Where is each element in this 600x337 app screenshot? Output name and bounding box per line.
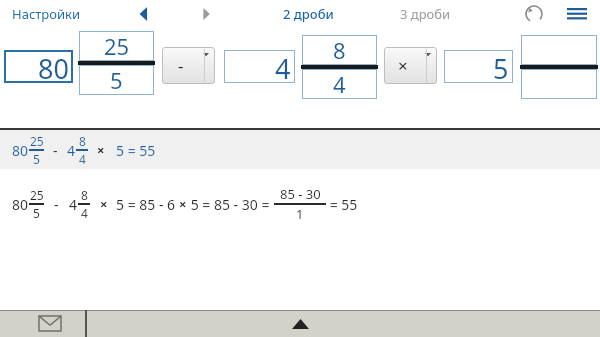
button[interactable]: Operator - <box>162 47 215 84</box>
staticText: 80 <box>12 141 29 160</box>
staticText: 1 <box>296 205 304 223</box>
staticText: 5 <box>33 205 40 221</box>
button[interactable]: 8 <box>302 35 377 65</box>
button[interactable]: 80 <box>4 50 73 83</box>
staticText: 5 <box>493 50 509 83</box>
staticText: 4 <box>67 141 76 160</box>
button[interactable]: Настройки <box>12 5 81 23</box>
staticText: 4 <box>69 195 78 214</box>
button[interactable]: 3 дроби <box>400 5 451 23</box>
staticText: 4 <box>275 50 291 83</box>
staticText: - <box>54 195 59 214</box>
staticText: 8 <box>81 187 88 203</box>
button[interactable]: Expand <box>280 310 320 337</box>
staticText: - <box>53 141 58 160</box>
staticText: 5 <box>33 151 40 167</box>
staticText: 25 <box>30 133 44 149</box>
staticText: 5 = 85 - 30 = <box>187 195 274 214</box>
staticText: 25 <box>30 187 44 203</box>
button[interactable]: Mail <box>30 310 70 337</box>
button[interactable]: Menu <box>562 0 592 28</box>
button[interactable]: 5 <box>444 50 513 83</box>
staticText: 8 <box>79 133 86 149</box>
button[interactable]: Previous <box>130 0 158 28</box>
button[interactable] <box>521 69 597 99</box>
staticText: 80 <box>12 195 29 214</box>
staticText: 4 <box>79 151 86 167</box>
button[interactable]: 25 <box>79 31 154 61</box>
staticText: 25 <box>104 31 130 61</box>
staticText: 5 <box>110 65 123 95</box>
staticText: - <box>178 54 184 77</box>
staticText: × <box>179 195 187 213</box>
staticText: × <box>100 195 108 213</box>
button[interactable]: Next <box>192 0 220 28</box>
staticText: 4 <box>81 205 88 221</box>
staticText: 5 = 85 - 6 <box>116 195 179 214</box>
button[interactable]: 4 <box>302 69 377 99</box>
button[interactable]: 5 <box>79 65 154 95</box>
button[interactable]: Operator × <box>384 47 437 84</box>
staticText: 85 - 30 <box>280 185 321 203</box>
button[interactable]: Undo <box>520 0 548 28</box>
staticText: × <box>97 141 105 159</box>
staticText: = 55 <box>326 195 358 214</box>
staticText: 4 <box>333 69 346 99</box>
button[interactable]: 4 <box>224 50 295 83</box>
staticText: 8 <box>333 35 346 65</box>
staticText: 80 <box>38 50 69 83</box>
staticText: × <box>398 54 408 77</box>
staticText: 5 = 55 <box>116 141 156 160</box>
button[interactable] <box>521 35 597 65</box>
button[interactable]: 2 дроби <box>283 5 334 23</box>
